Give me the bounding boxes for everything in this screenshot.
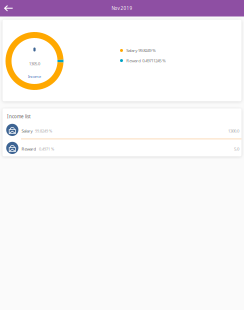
staticText: 0.4971 % <box>39 146 54 152</box>
button[interactable]: Salary <box>2 121 241 138</box>
staticText: 5.0 <box>234 146 239 152</box>
staticText: Salary 99.8249 % <box>126 47 156 53</box>
staticText: Reward 0.49711245 % <box>126 58 166 63</box>
staticText: Income <box>28 74 41 79</box>
button[interactable]: Back <box>0 0 17 17</box>
staticText: Income list <box>7 113 31 119</box>
staticText: Reward <box>21 146 36 152</box>
staticText: Salary <box>21 128 32 134</box>
staticText: 1300.0 <box>228 128 239 134</box>
staticText: 99.8249 % <box>35 128 52 134</box>
staticText: Nov 2019 <box>111 5 132 11</box>
button[interactable]: Reward <box>2 139 241 156</box>
staticText: 1305.0 <box>29 61 40 66</box>
